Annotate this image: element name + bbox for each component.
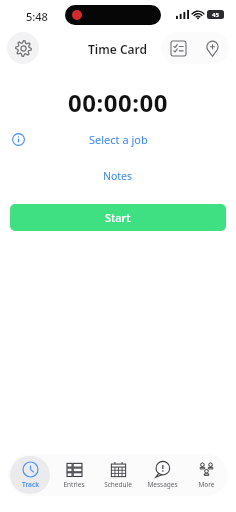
staticText: Track <box>22 480 39 489</box>
button[interactable]: Settings <box>7 32 39 64</box>
staticText: More <box>198 480 215 489</box>
staticText: Notes <box>103 169 133 183</box>
button[interactable]: Select a job <box>0 126 236 152</box>
button[interactable]: Entries <box>52 454 96 496</box>
staticText: Schedule <box>104 480 132 489</box>
button[interactable]: Add location <box>195 32 229 64</box>
button[interactable]: Schedule <box>96 454 140 496</box>
staticText: 00:00:00 <box>68 86 168 116</box>
staticText: Entries <box>63 480 85 489</box>
button[interactable]: Checklist <box>161 32 195 64</box>
button[interactable]: Information <box>9 130 27 148</box>
button[interactable]: Track <box>8 454 52 496</box>
staticText: Messages <box>147 480 178 489</box>
staticText: Start <box>105 210 131 225</box>
staticText: Select a job <box>89 132 148 147</box>
button[interactable]: More <box>184 454 228 496</box>
button[interactable]: Notes <box>0 164 236 188</box>
staticText: Time Card <box>88 41 148 57</box>
button[interactable]: Messages <box>140 454 184 496</box>
button[interactable]: Start <box>10 204 226 231</box>
staticText: 5:48 <box>26 9 48 24</box>
staticText: 45 <box>212 11 219 19</box>
